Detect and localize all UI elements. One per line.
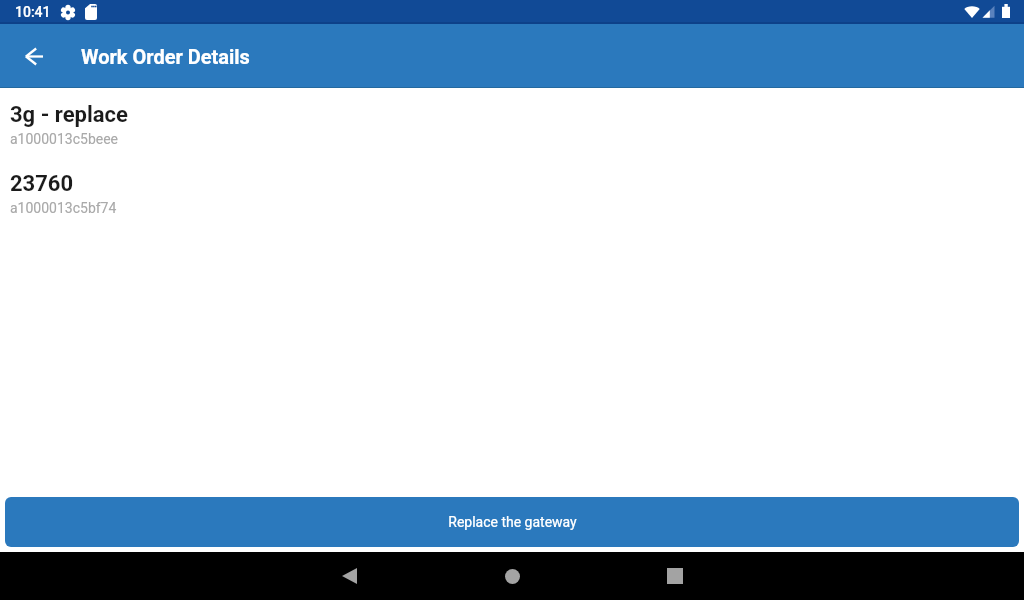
button[interactable]: Replace the gateway (5, 497, 1019, 547)
staticText: 3g - replace (10, 102, 128, 128)
staticText: a1000013c5bf74 (10, 200, 117, 216)
button[interactable]: Back (294, 552, 404, 600)
staticText: Work Order Details (81, 45, 250, 68)
staticText: Replace the gateway (448, 514, 577, 530)
button[interactable]: Home (457, 552, 567, 600)
staticText: a1000013c5beee (10, 131, 119, 147)
staticText: 23760 (10, 171, 74, 197)
button[interactable]: Navigate up (0, 24, 67, 88)
button[interactable]: Recent apps (620, 552, 730, 600)
staticText: 10:41 (15, 4, 51, 20)
